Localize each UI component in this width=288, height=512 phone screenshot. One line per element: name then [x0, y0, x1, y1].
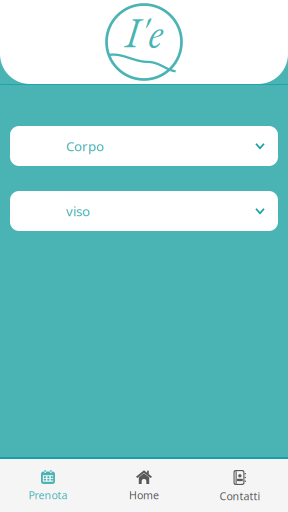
staticText: viso	[66, 202, 90, 220]
staticText: Home	[129, 488, 159, 502]
button[interactable]: Corpo	[10, 126, 278, 166]
staticText: Prenota	[28, 488, 67, 502]
staticText: Contatti	[219, 489, 260, 503]
button[interactable]: Contatti	[192, 459, 288, 512]
button[interactable]: Home	[96, 459, 192, 512]
button[interactable]: Prenota	[0, 459, 96, 512]
staticText: I'e	[124, 4, 163, 60]
button[interactable]: viso	[10, 191, 278, 231]
staticText: Corpo	[66, 137, 104, 155]
